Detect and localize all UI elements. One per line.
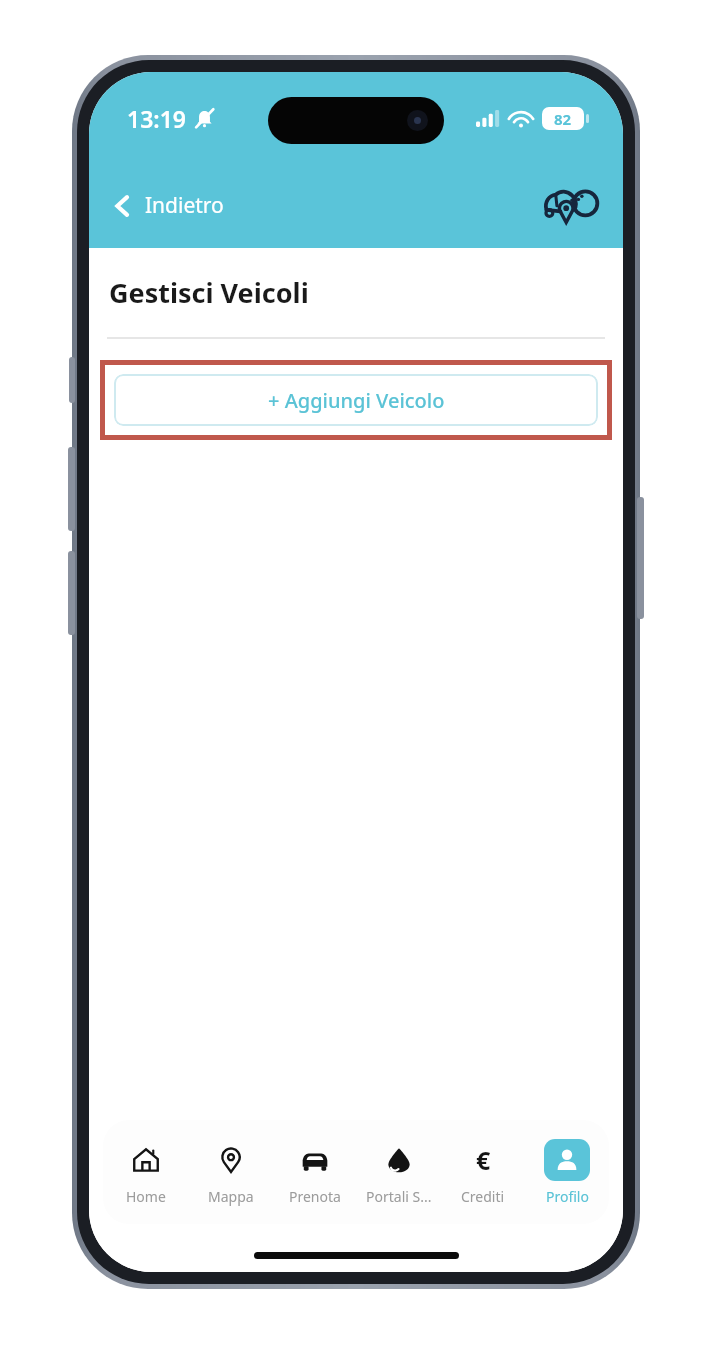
staticText: Mappa xyxy=(208,1187,254,1206)
button[interactable]: Home xyxy=(103,1120,188,1224)
button[interactable]: Profilo xyxy=(525,1120,609,1224)
staticText: + Aggiungi Veicolo xyxy=(268,387,445,414)
staticText: Profilo xyxy=(546,1187,589,1206)
staticText: Home xyxy=(126,1187,166,1206)
staticText: Prenota xyxy=(289,1187,341,1206)
staticText: Crediti xyxy=(461,1187,505,1206)
button[interactable]: Logo app xyxy=(541,181,603,229)
button[interactable]: Indietro xyxy=(103,183,234,228)
staticText: 82 xyxy=(554,109,572,129)
button[interactable]: € xyxy=(441,1120,525,1224)
staticText: Indietro xyxy=(145,191,224,220)
staticText: 13:19 xyxy=(127,103,186,134)
staticText: Gestisci Veicoli xyxy=(109,274,309,311)
button[interactable]: Prenota xyxy=(273,1120,357,1224)
button[interactable]: + Aggiungi Veicolo xyxy=(114,374,598,426)
staticText: € xyxy=(476,1143,491,1177)
button[interactable]: Mappa xyxy=(188,1120,273,1224)
button[interactable]: Portali S... xyxy=(357,1120,441,1224)
staticText: Portali S... xyxy=(366,1187,432,1206)
